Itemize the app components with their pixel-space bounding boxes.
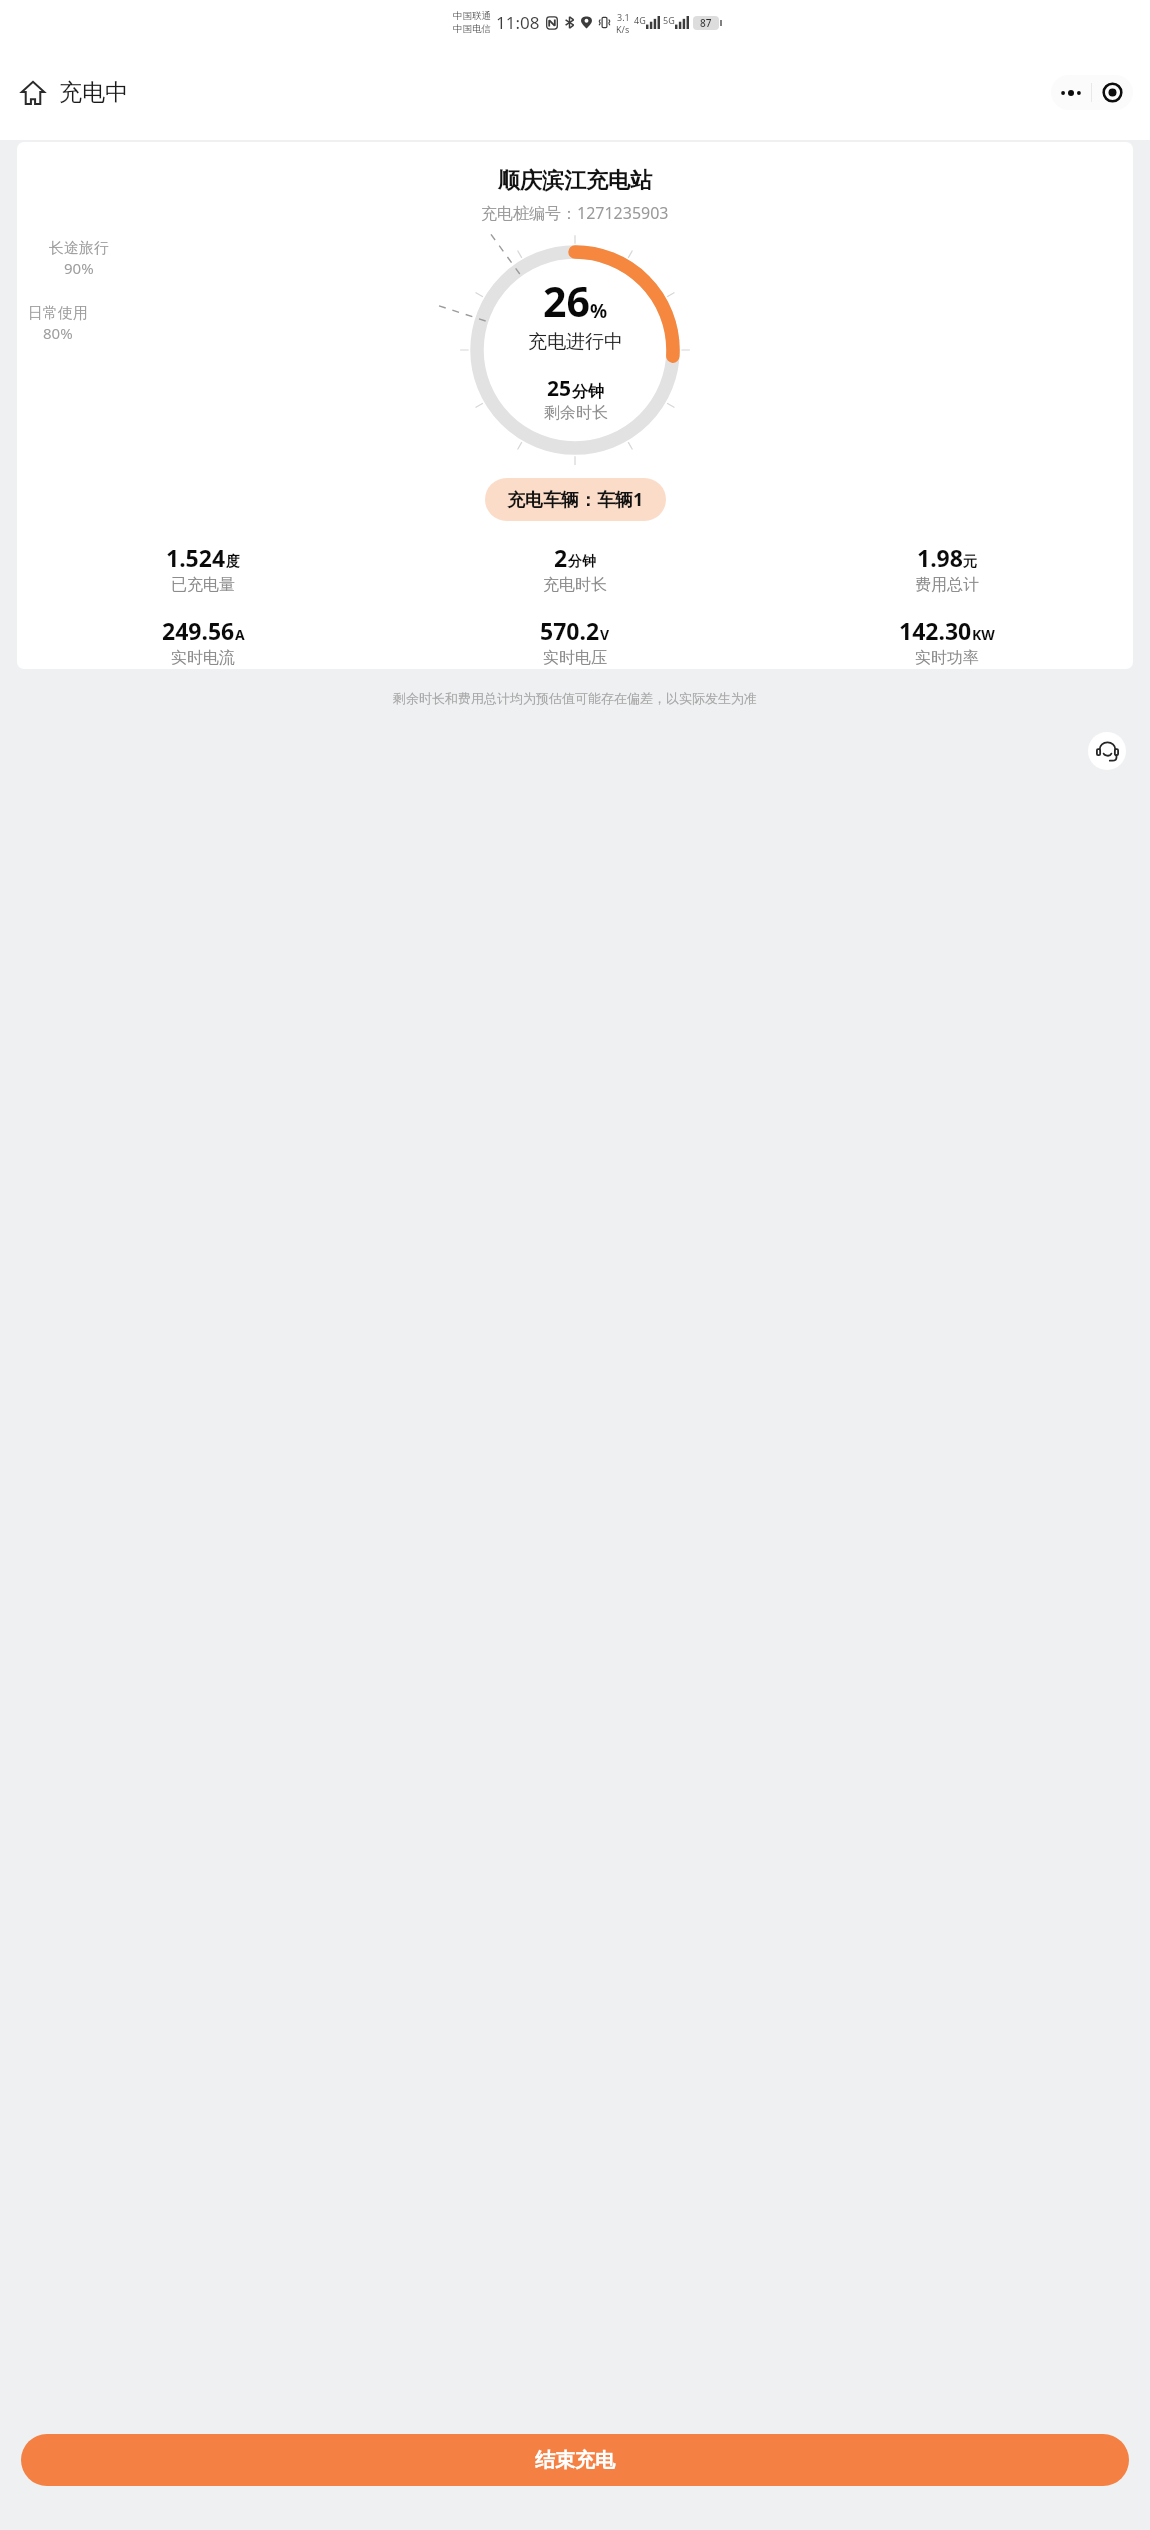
staticText: 结束充电 [535,2448,615,2473]
button[interactable]: 结束充电 [21,2434,1129,2486]
staticText: K/s [616,23,630,35]
staticText: % [590,298,608,324]
staticText: 实时功率 [915,648,979,668]
staticText: 1.524 [166,542,226,573]
staticText: 顺庆滨江充电站 [498,167,652,195]
staticText: A [235,625,245,644]
staticText: 实时电压 [543,648,607,668]
staticText: 142.30 [899,615,972,646]
staticText: 充电中 [59,78,128,107]
staticText: 25 [547,374,572,403]
staticText: 80% [43,323,73,343]
staticText: 日常使用 [28,304,88,323]
staticText: 87 [700,16,712,30]
staticText: 1.98 [917,542,963,573]
staticText: KW [972,625,995,644]
button[interactable]: 首页 [16,74,132,111]
staticText: 已充电量 [171,575,235,595]
staticText: 分钟 [568,553,596,571]
staticText: 度 [226,553,240,571]
staticText: 元 [963,553,977,571]
staticText: 充电桩编号：1271235903 [481,202,669,224]
staticText: 249.56 [162,615,235,646]
staticText: 26 [543,273,590,329]
button[interactable]: 客服 [1088,732,1126,770]
staticText: 中国电信 [453,23,491,35]
staticText: 长途旅行 [49,239,109,258]
staticText: 90% [64,258,94,278]
staticText: 4G [634,14,646,26]
staticText: 中国联通 [453,10,491,22]
other: 首页 [20,80,46,106]
staticText: 剩余时长和费用总计均为预估值可能存在偏差，以实际发生为准 [393,690,757,706]
button[interactable]: 充电车辆：车辆1 [485,478,666,521]
staticText: 剩余时长 [544,403,608,423]
staticText: 11:08 [496,11,540,34]
staticText: 费用总计 [915,575,979,595]
staticText: 5G [663,14,675,26]
staticText: 分钟 [572,382,604,402]
button[interactable]: 关闭 [1092,75,1133,110]
staticText: 3.1 [617,11,630,23]
staticText: V [600,625,610,644]
button[interactable]: 更多 [1051,75,1091,110]
staticText: 充电进行中 [528,330,623,354]
staticText: 2 [554,542,568,573]
staticText: 充电车辆：车辆1 [507,487,644,512]
staticText: 充电时长 [543,575,607,595]
staticText: 实时电流 [171,648,235,668]
staticText: 570.2 [540,615,600,646]
